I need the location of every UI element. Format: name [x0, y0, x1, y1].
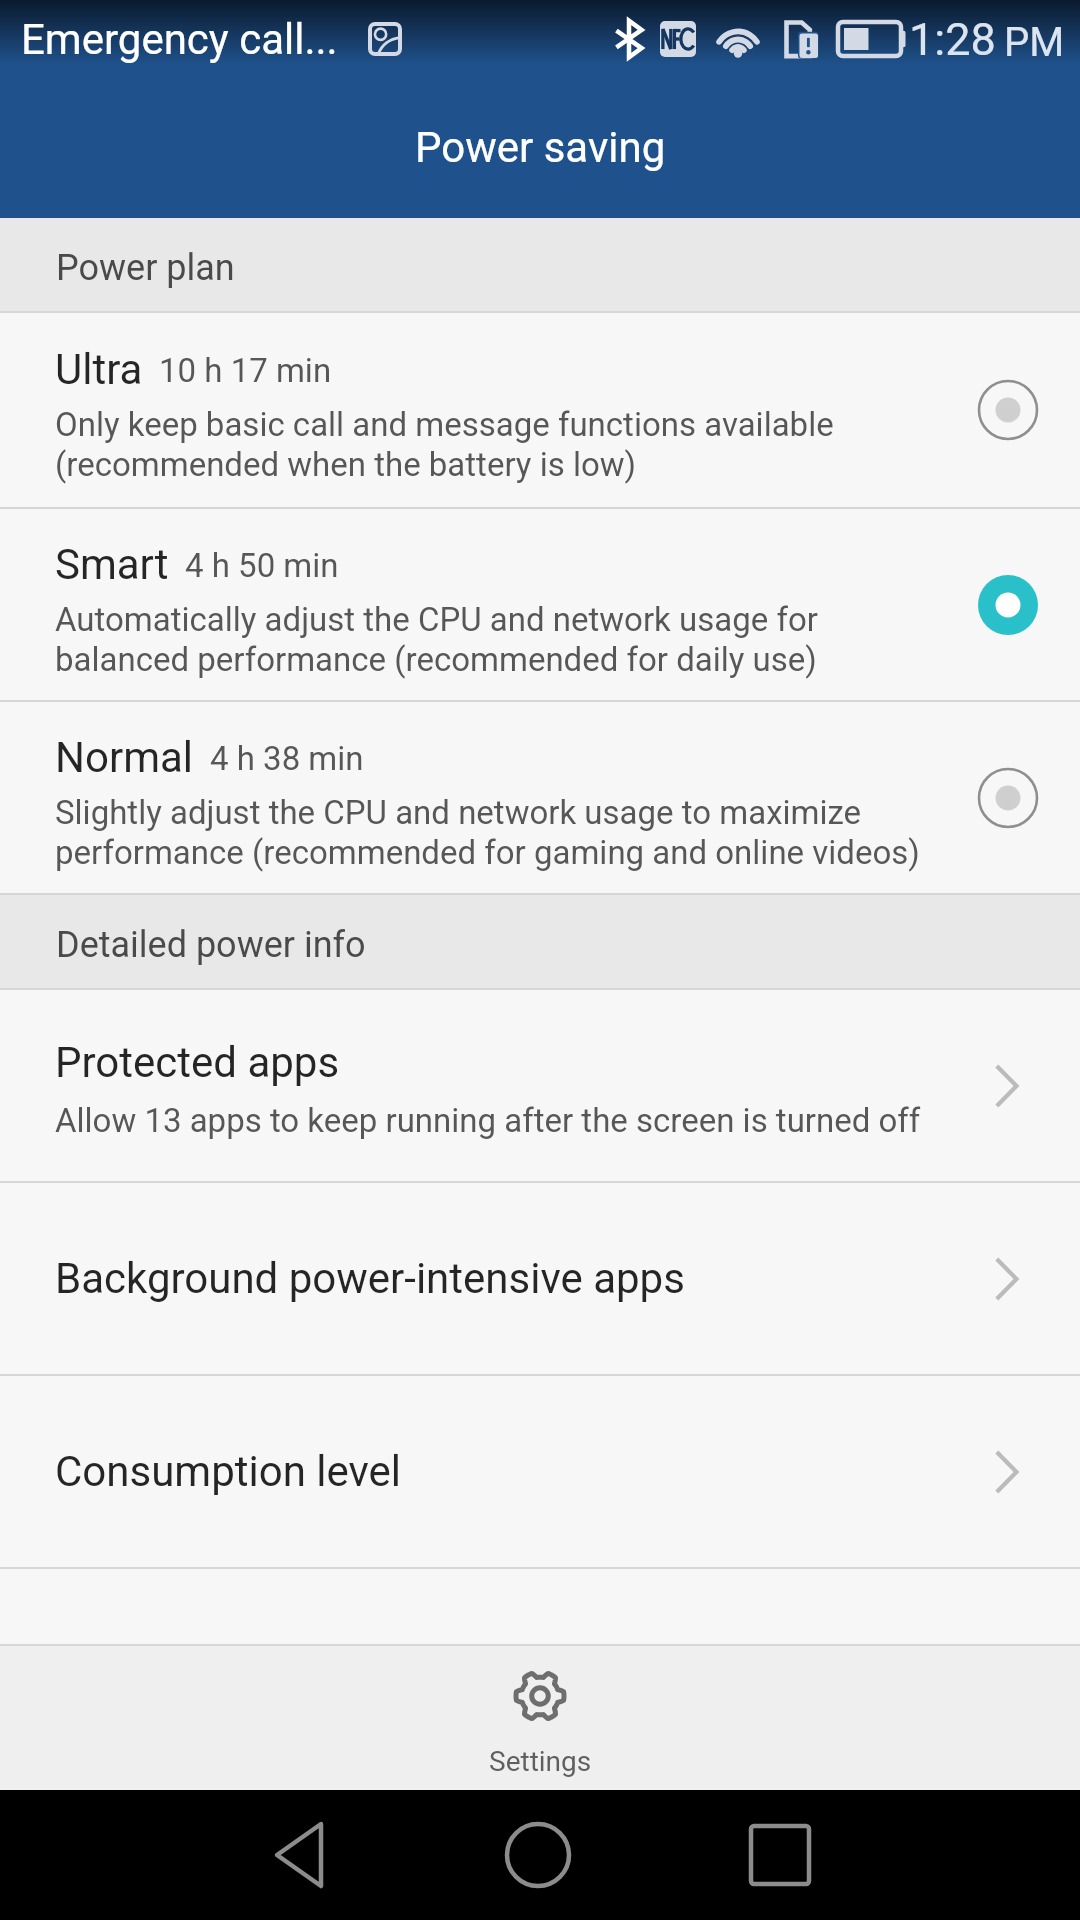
button[interactable]: Ultra	[0, 313, 1080, 507]
other: NFC	[660, 21, 696, 57]
button[interactable]: Recent apps	[700, 1790, 860, 1920]
staticText: Consumption level	[55, 1447, 402, 1496]
staticText: Detailed power info	[56, 924, 366, 966]
staticText: Background power-intensive apps	[55, 1254, 685, 1303]
staticText: PM	[1004, 19, 1065, 66]
staticText: Settings	[489, 1745, 592, 1778]
button[interactable]: Settings	[0, 1644, 1080, 1790]
staticText: Emergency call...	[21, 15, 338, 64]
staticText: Protected apps	[55, 1038, 340, 1087]
button[interactable]: Normal	[0, 702, 1080, 893]
staticText: Only keep basic call and message functio…	[55, 405, 834, 485]
button[interactable]: Back	[220, 1790, 380, 1920]
staticText: Ultra	[55, 345, 143, 394]
button[interactable]: Consumption level	[0, 1376, 1080, 1567]
button[interactable]: Selected option	[962, 559, 1054, 651]
button[interactable]: Select option	[962, 752, 1054, 844]
staticText: 4 h 38 min	[210, 739, 364, 778]
staticText: 1:28	[909, 13, 996, 66]
button[interactable]: Background power-intensive apps	[0, 1183, 1080, 1374]
staticText: 4 h 50 min	[185, 546, 339, 585]
staticText: Automatically adjust the CPU and network…	[55, 600, 818, 680]
staticText: Slightly adjust the CPU and network usag…	[55, 793, 920, 873]
button[interactable]: Home	[458, 1790, 618, 1920]
button[interactable]: Select option	[962, 364, 1054, 456]
button[interactable]: Smart	[0, 509, 1080, 700]
staticText: Allow 13 apps to keep running after the …	[55, 1101, 921, 1140]
staticText: Normal	[55, 733, 194, 782]
staticText: Power plan	[56, 247, 235, 289]
other: Screenshot	[368, 22, 402, 56]
staticText: 10 h 17 min	[159, 351, 332, 390]
button[interactable]: Protected apps	[0, 990, 1080, 1181]
other: Wi-Fi	[712, 20, 764, 58]
staticText: Smart	[55, 540, 169, 589]
staticText: Power saving	[415, 123, 666, 172]
